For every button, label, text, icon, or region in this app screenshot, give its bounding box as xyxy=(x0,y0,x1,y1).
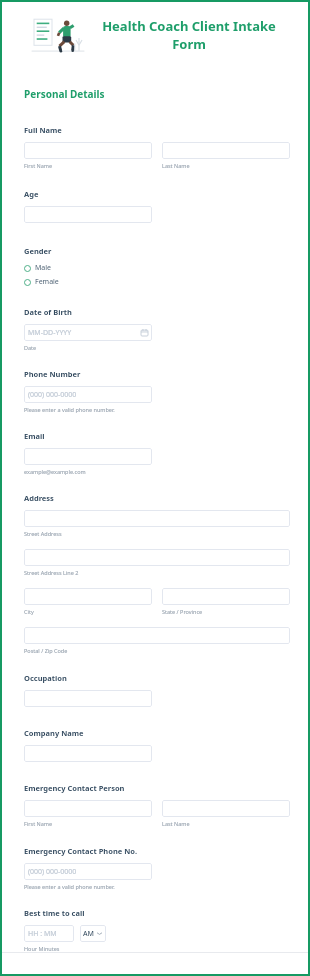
button[interactable] xyxy=(162,588,290,605)
staticText: Age xyxy=(24,189,39,199)
staticText: Male xyxy=(35,263,52,273)
staticText: State / Province xyxy=(162,608,203,615)
staticText: Full Name xyxy=(24,125,62,135)
staticText: Emergency Contact Person xyxy=(24,783,125,793)
button[interactable] xyxy=(24,142,152,159)
staticText: Health Coach Client Intake Form xyxy=(94,17,284,53)
button[interactable] xyxy=(24,510,290,527)
staticText: Gender xyxy=(24,246,52,256)
button[interactable] xyxy=(24,588,152,605)
staticText: Phone Number xyxy=(24,369,81,379)
staticText: First Name xyxy=(24,162,53,169)
staticText: Hour Minutes xyxy=(24,945,60,952)
staticText: First Name xyxy=(24,820,53,827)
staticText: (000) 000-0000 xyxy=(28,390,77,400)
button[interactable] xyxy=(162,800,290,817)
staticText: Email xyxy=(24,431,45,441)
button[interactable] xyxy=(24,745,152,762)
staticText: Please enter a valid phone number. xyxy=(24,883,115,890)
staticText: Best time to call xyxy=(24,908,85,918)
staticText: Date of Birth xyxy=(24,307,72,317)
staticText: Last Name xyxy=(162,820,190,827)
staticText: (000) 000-0000 xyxy=(28,867,77,877)
staticText: Female xyxy=(35,277,59,287)
button[interactable]: MM-DD-YYYY xyxy=(24,324,152,341)
staticText: Please enter a valid phone number. xyxy=(24,406,115,413)
button[interactable] xyxy=(24,627,290,644)
staticText: example@example.com xyxy=(24,468,86,475)
staticText: Address xyxy=(24,493,54,503)
button[interactable]: (000) 000-0000 xyxy=(24,386,152,403)
staticText: Street Address Line 2 xyxy=(24,569,79,576)
staticText: Street Address xyxy=(24,530,62,537)
button[interactable]: (000) 000-0000 xyxy=(24,863,152,880)
button[interactable]: AM xyxy=(80,925,106,942)
button[interactable] xyxy=(24,549,290,566)
staticText: Emergency Contact Phone No. xyxy=(24,846,138,856)
button[interactable] xyxy=(162,142,290,159)
staticText: Personal Details xyxy=(24,87,105,101)
staticText: City xyxy=(24,608,34,615)
staticText: MM-DD-YYYY xyxy=(28,328,72,338)
staticText: HH : MM xyxy=(28,929,57,939)
staticText: AM xyxy=(83,929,95,939)
button[interactable]: Male xyxy=(24,262,152,274)
staticText: Postal / Zip Code xyxy=(24,647,68,654)
staticText: Company Name xyxy=(24,728,84,738)
button[interactable] xyxy=(24,800,152,817)
staticText: Date xyxy=(24,344,37,351)
button[interactable]: HH : MM xyxy=(24,925,74,942)
button[interactable] xyxy=(24,448,152,465)
staticText: Last Name xyxy=(162,162,190,169)
staticText: Occupation xyxy=(24,673,67,683)
button[interactable] xyxy=(24,206,152,223)
button[interactable]: Female xyxy=(24,276,152,288)
button[interactable] xyxy=(24,690,152,707)
